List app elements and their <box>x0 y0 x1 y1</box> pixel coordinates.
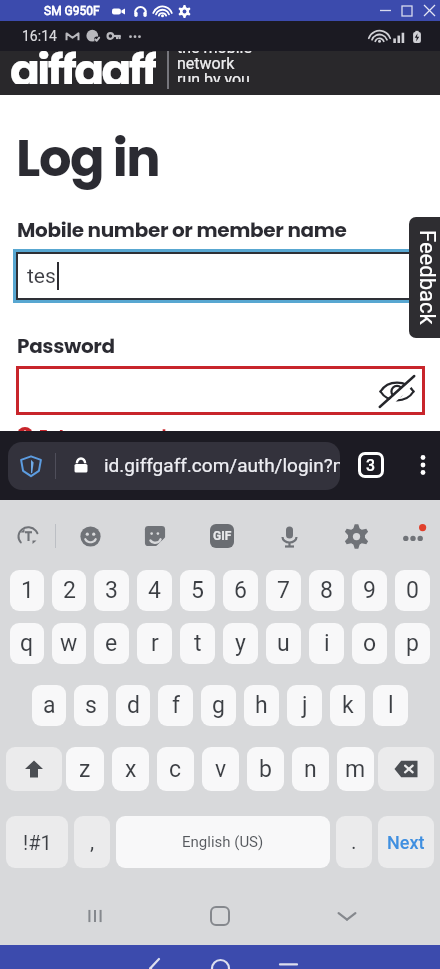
button[interactable]: More options <box>404 446 440 484</box>
button[interactable]: d <box>116 685 150 726</box>
staticText: giffgaff <box>10 51 156 84</box>
button[interactable]: . <box>336 816 372 868</box>
button[interactable]: b <box>247 747 284 791</box>
button[interactable]: p <box>395 623 430 664</box>
button[interactable]: 2 <box>52 570 86 611</box>
button[interactable] <box>409 217 440 338</box>
button[interactable]: 8 <box>309 570 344 611</box>
button[interactable]: Minimise <box>374 0 396 21</box>
button[interactable]: 5 <box>180 570 215 611</box>
staticText: z <box>79 756 91 783</box>
button[interactable]: g <box>201 685 236 726</box>
staticText: w <box>60 630 78 657</box>
staticText: d <box>127 692 140 719</box>
staticText: i <box>324 630 330 657</box>
button[interactable]: 3 <box>94 570 129 611</box>
button[interactable]: n <box>292 747 329 791</box>
staticText: SM G950F <box>44 4 100 18</box>
button[interactable]: 4 <box>137 570 172 611</box>
staticText: b <box>259 756 272 783</box>
staticText: p <box>406 630 419 657</box>
button[interactable]: GIF <box>204 518 240 554</box>
staticText: k <box>342 692 354 719</box>
button[interactable]: id.giffgaff.com/auth/login?n <box>8 442 340 490</box>
button[interactable]: Voice input <box>271 518 307 554</box>
button[interactable]: x <box>112 747 149 791</box>
button[interactable]: l <box>373 685 408 726</box>
staticText: Next <box>387 832 425 853</box>
button[interactable]: !#1 <box>6 816 68 868</box>
staticText: v <box>215 756 227 783</box>
button[interactable]: o <box>352 623 387 664</box>
button[interactable]: Next <box>378 816 434 868</box>
button[interactable]: m <box>337 747 374 791</box>
button[interactable]: k <box>330 685 365 726</box>
button[interactable]: English (US) <box>116 816 330 868</box>
button[interactable]: tes <box>16 252 424 300</box>
button[interactable]: w <box>52 623 86 664</box>
staticText: Feedback <box>414 230 440 325</box>
button[interactable]: Show password <box>16 366 425 415</box>
staticText: 8 <box>320 577 333 604</box>
staticText: Password <box>17 332 115 360</box>
button[interactable]: 1 <box>10 570 44 611</box>
button[interactable]: Home <box>200 896 240 936</box>
button[interactable]: Recents <box>271 956 305 969</box>
button[interactable]: h <box>244 685 279 726</box>
staticText: !#1 <box>23 831 52 854</box>
button[interactable]: 6 <box>223 570 258 611</box>
button[interactable]: Back <box>138 956 172 969</box>
button[interactable]: e <box>94 623 129 664</box>
button[interactable]: Backspace <box>378 747 434 791</box>
staticText: o <box>363 630 377 657</box>
button[interactable]: i <box>309 623 344 664</box>
button[interactable]: a <box>32 685 66 726</box>
button[interactable]: Keyboard settings <box>338 518 374 554</box>
staticText: y <box>235 630 246 657</box>
staticText: 9 <box>363 577 376 604</box>
staticText: GIF <box>213 529 232 543</box>
button[interactable]: More <box>395 518 431 554</box>
button[interactable]: Hide keyboard <box>327 896 367 936</box>
staticText: tes <box>27 264 56 289</box>
button[interactable]: Shift <box>6 747 62 791</box>
button[interactable]: Maximise <box>396 0 418 21</box>
button[interactable]: s <box>74 685 108 726</box>
button[interactable]: 7 <box>266 570 301 611</box>
staticText: the mobile network run by you <box>177 51 252 82</box>
button[interactable]: 0 <box>395 570 430 611</box>
button[interactable]: u <box>266 623 301 664</box>
button[interactable]: Translate <box>10 518 46 554</box>
staticText: 0 <box>406 577 419 604</box>
staticText: q <box>20 630 34 657</box>
button[interactable]: Tabs <box>352 446 390 484</box>
button[interactable]: v <box>202 747 239 791</box>
staticText: 6 <box>234 577 247 604</box>
button[interactable]: Close <box>418 0 440 21</box>
staticText: x <box>125 756 137 783</box>
staticText: 5 <box>191 577 204 604</box>
button[interactable]: z <box>66 747 104 791</box>
staticText: e <box>105 630 118 657</box>
button[interactable]: c <box>157 747 194 791</box>
staticText: 16:14 <box>22 28 57 44</box>
staticText: 7 <box>277 577 290 604</box>
staticText: r <box>151 630 159 657</box>
button[interactable]: 9 <box>352 570 387 611</box>
button[interactable]: q <box>10 623 44 664</box>
button[interactable]: , <box>74 816 110 868</box>
staticText: Log in <box>16 122 160 193</box>
button[interactable]: t <box>180 623 215 664</box>
staticText: s <box>85 692 97 719</box>
button[interactable]: Recents <box>75 896 115 936</box>
button[interactable]: y <box>223 623 258 664</box>
button[interactable]: r <box>137 623 172 664</box>
button[interactable]: f <box>158 685 193 726</box>
button[interactable]: Stickers <box>137 518 173 554</box>
button[interactable]: Home <box>203 956 237 969</box>
staticText: 1 <box>21 577 34 604</box>
button[interactable]: Show password <box>378 372 416 410</box>
button[interactable]: j <box>287 685 322 726</box>
button[interactable]: Emoji <box>72 518 108 554</box>
staticText: Mobile number or member name <box>17 216 347 244</box>
